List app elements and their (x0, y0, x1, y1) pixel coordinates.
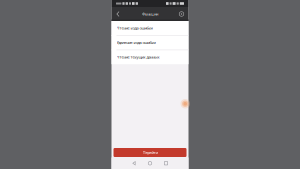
staticText: Функции (142, 11, 158, 16)
button[interactable]: Home (142, 157, 158, 169)
button[interactable]: Удаление кода ошибки (111, 36, 188, 50)
button[interactable]: Help (176, 7, 186, 21)
staticText: Чтение текущих данных (116, 55, 159, 60)
button[interactable]: Back (113, 7, 123, 21)
button[interactable]: Перейти (111, 148, 188, 157)
button[interactable]: Чтение кода ошибки (111, 21, 188, 35)
staticText: Перейти (142, 150, 157, 155)
button[interactable]: Back (126, 157, 142, 169)
staticText: Удаление кода ошибки (116, 40, 155, 45)
button[interactable]: Recents (158, 157, 174, 169)
button[interactable]: Чтение текущих данных (111, 50, 188, 64)
staticText: Чтение кода ошибки (116, 26, 152, 30)
